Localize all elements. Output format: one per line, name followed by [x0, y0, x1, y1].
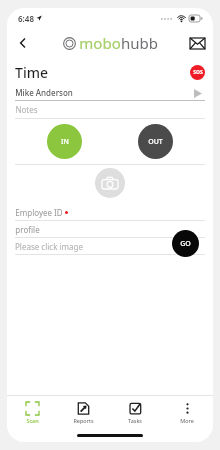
- staticText: GO: [180, 239, 191, 249]
- staticText: OUT: [148, 137, 163, 147]
- button[interactable]: OUT: [138, 124, 173, 159]
- button[interactable]: Messages: [185, 31, 209, 55]
- button[interactable]: Back: [10, 30, 36, 56]
- button[interactable]: Tasks: [109, 396, 161, 429]
- staticText: Time: [15, 63, 48, 82]
- button[interactable]: Scan: [7, 396, 58, 429]
- staticText: Mike Anderson: [15, 87, 73, 98]
- staticText: Reports: [73, 417, 94, 424]
- staticText: Scan: [26, 417, 39, 424]
- staticText: SOS: [193, 69, 203, 76]
- button[interactable]: More: [161, 396, 213, 429]
- staticText: More: [180, 417, 194, 424]
- button[interactable]: GO: [172, 230, 199, 257]
- staticText: Notes: [15, 104, 38, 115]
- staticText: mobo: [79, 33, 121, 53]
- button[interactable]: Take photo: [95, 168, 125, 198]
- staticText: IN: [61, 137, 69, 147]
- button[interactable]: Play: [191, 86, 205, 100]
- staticText: 6:48: [18, 13, 34, 24]
- button[interactable]: IN: [47, 124, 82, 159]
- staticText: profile: [15, 224, 40, 235]
- staticText: Tasks: [128, 417, 142, 424]
- button[interactable]: Reports: [58, 396, 109, 429]
- staticText: Employee ID: [15, 207, 63, 218]
- staticText: Please click image: [15, 241, 83, 252]
- button[interactable]: SOS: [190, 65, 205, 80]
- staticText: hubb: [121, 33, 158, 53]
